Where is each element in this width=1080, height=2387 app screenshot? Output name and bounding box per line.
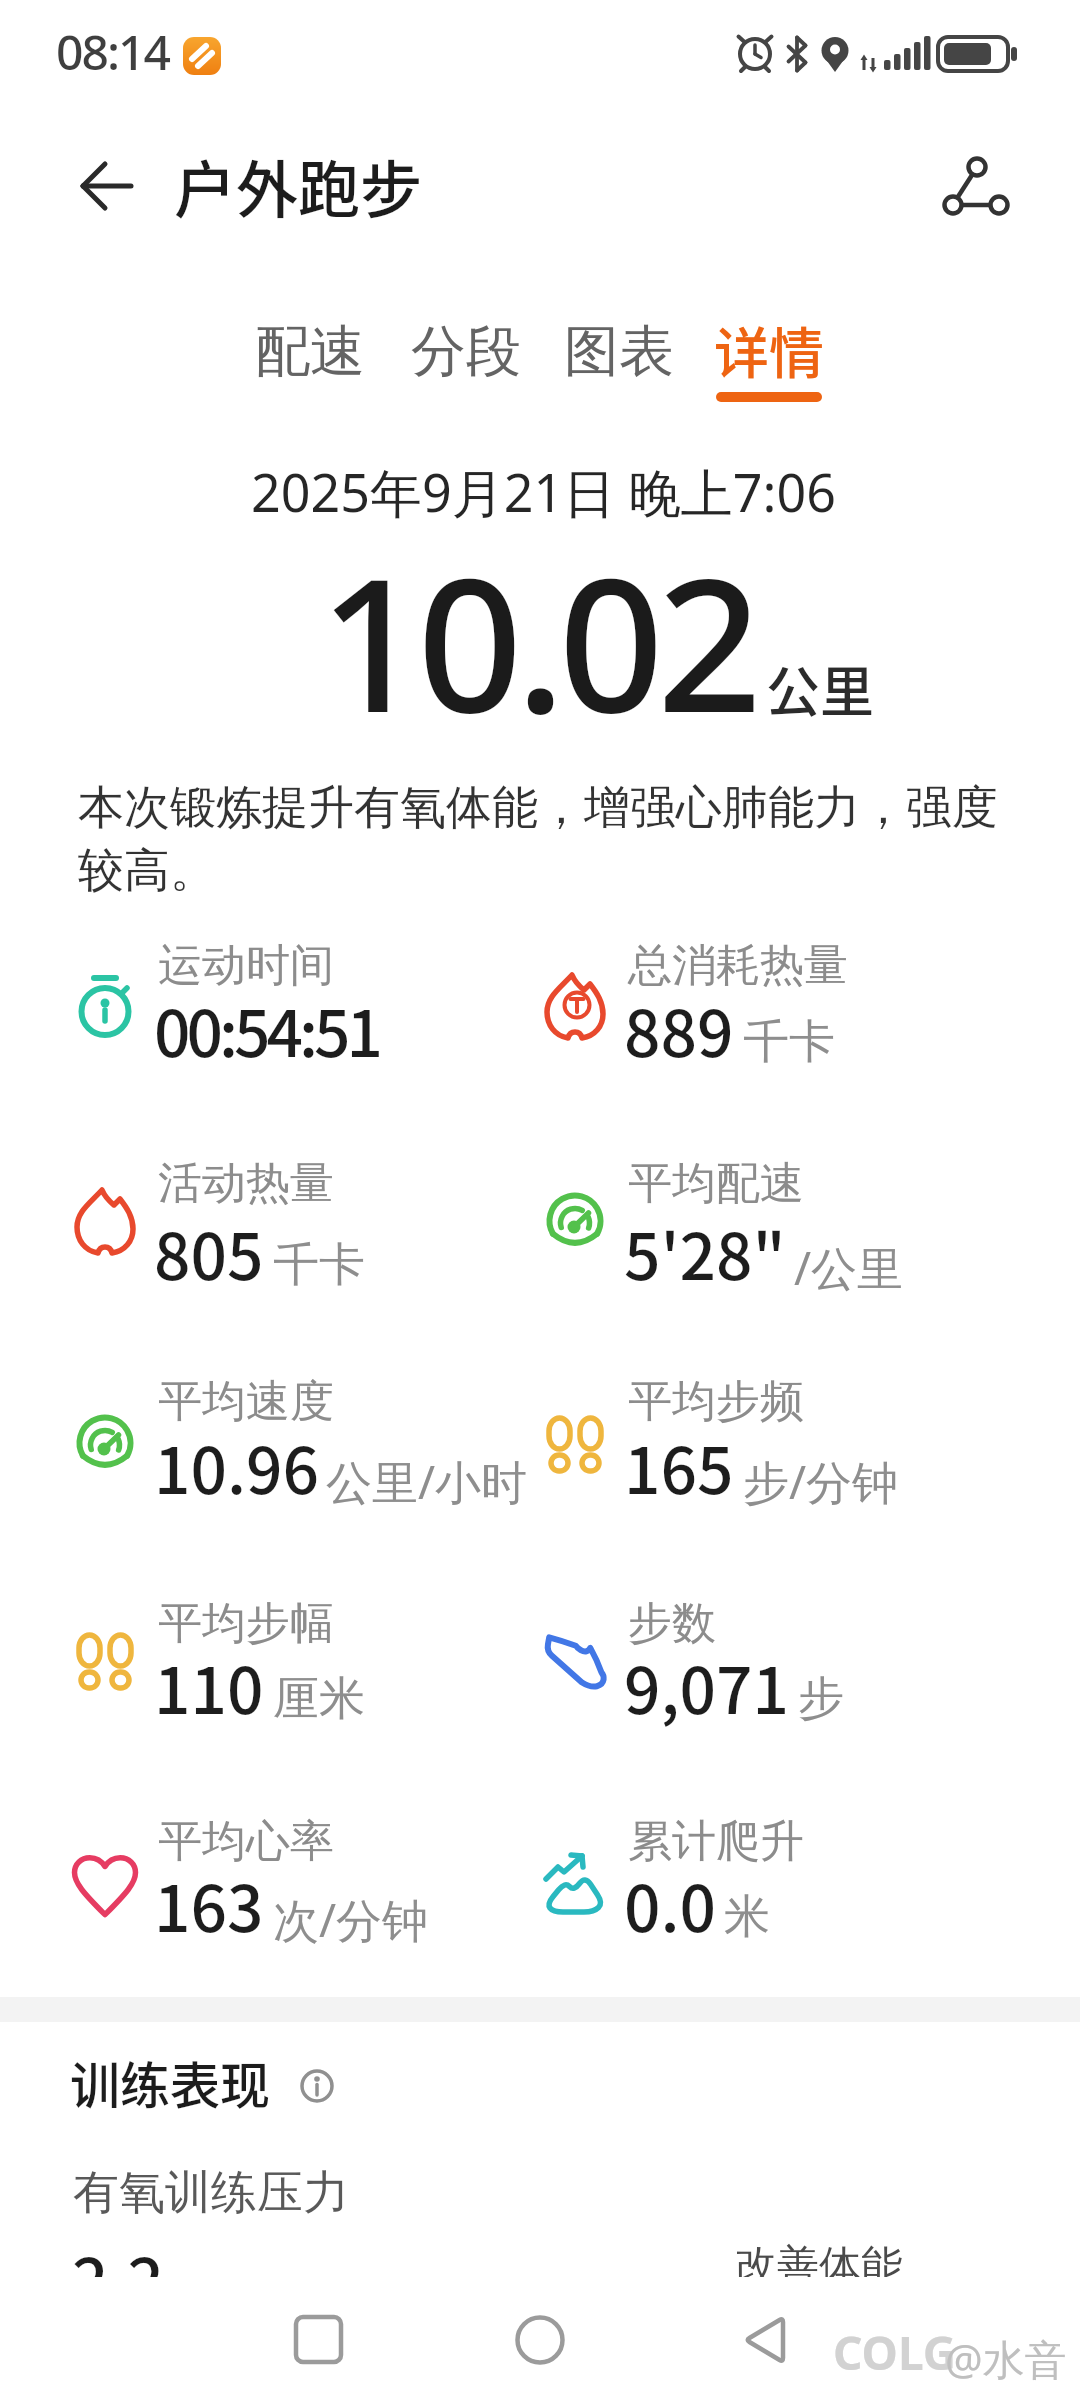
staticText: 次/分钟 bbox=[273, 1888, 429, 1951]
staticText: 公里/小时 bbox=[326, 1450, 528, 1513]
staticText: 805 bbox=[154, 1206, 264, 1299]
staticText: 110 bbox=[154, 1640, 264, 1733]
staticText: 训练表现 bbox=[70, 2046, 270, 2118]
staticText: COLG bbox=[833, 2321, 957, 2384]
staticText: 较高。 bbox=[78, 842, 216, 900]
staticText: 活动热量 bbox=[158, 1156, 334, 1211]
button[interactable] bbox=[276, 2297, 361, 2382]
staticText: 163 bbox=[154, 1858, 264, 1951]
staticText: 08:14 bbox=[56, 19, 169, 84]
staticText: 平均配速 bbox=[628, 1156, 804, 1211]
staticText: 889 bbox=[624, 983, 734, 1076]
staticText: 10.02 bbox=[319, 515, 756, 766]
staticText: 户外跑步 bbox=[174, 141, 423, 231]
staticText: 累计爬升 bbox=[628, 1814, 804, 1869]
staticText: 千卡 bbox=[743, 1013, 835, 1071]
staticText: 步 bbox=[798, 1670, 844, 1728]
staticText: 图表 bbox=[564, 317, 674, 386]
staticText: 米 bbox=[724, 1888, 770, 1946]
staticText: 平均心率 bbox=[158, 1814, 334, 1869]
staticText: 有氧训练压力 bbox=[73, 2164, 349, 2222]
staticText: 00:54:51 bbox=[154, 983, 380, 1076]
staticText: 平均步幅 bbox=[158, 1596, 334, 1651]
staticText: 步/分钟 bbox=[743, 1450, 899, 1513]
staticText: 改善体能 bbox=[735, 2240, 903, 2293]
staticText: @水音 bbox=[945, 2330, 1067, 2387]
button[interactable]: 详情 bbox=[684, 296, 854, 386]
staticText: 0.0 bbox=[624, 1858, 717, 1951]
button[interactable] bbox=[60, 146, 150, 226]
button[interactable]: 配速 bbox=[225, 296, 395, 386]
staticText: 步数 bbox=[628, 1596, 716, 1651]
button[interactable] bbox=[722, 2297, 807, 2382]
staticText: 2025年9月21日 晚上7:06 bbox=[251, 456, 836, 527]
staticText: /公里 bbox=[794, 1236, 904, 1299]
button[interactable] bbox=[498, 2297, 583, 2382]
staticText: 5'28" bbox=[624, 1206, 786, 1299]
staticText: 平均步频 bbox=[628, 1374, 804, 1429]
button[interactable] bbox=[292, 2062, 342, 2110]
button[interactable]: 分段 bbox=[381, 296, 551, 386]
staticText: 详情 bbox=[714, 309, 825, 389]
staticText: 2.2 bbox=[72, 2231, 165, 2324]
staticText: 总消耗热量 bbox=[628, 938, 848, 993]
staticText: 9,071 bbox=[624, 1640, 789, 1733]
staticText: 配速 bbox=[255, 317, 365, 386]
staticText: 千卡 bbox=[273, 1236, 365, 1294]
staticText: 10.96 bbox=[154, 1420, 319, 1513]
staticText: 运动时间 bbox=[158, 938, 334, 993]
staticText: 165 bbox=[624, 1420, 734, 1513]
staticText: 本次锻炼提升有氧体能，增强心肺能力，强度 bbox=[78, 779, 998, 837]
staticText: 厘米 bbox=[273, 1670, 365, 1728]
staticText: 分段 bbox=[411, 317, 521, 386]
button[interactable]: 图表 bbox=[534, 296, 704, 386]
button[interactable] bbox=[930, 140, 1025, 232]
staticText: 公里 bbox=[766, 649, 874, 727]
staticText: 平均速度 bbox=[158, 1374, 334, 1429]
